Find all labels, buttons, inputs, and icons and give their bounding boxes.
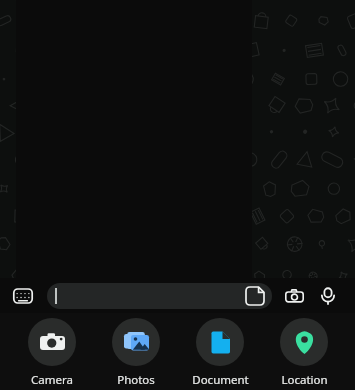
button[interactable]: Sticker [47,283,272,309]
button[interactable]: Camera [9,318,94,390]
button[interactable]: Document [178,318,262,390]
button[interactable]: Keyboard [11,284,34,307]
button[interactable]: Photos [94,318,178,390]
staticText: Photos [117,372,155,388]
button[interactable]: Sticker [246,287,264,305]
button[interactable]: Voice message [315,283,341,309]
staticText: Document [192,372,249,388]
staticText: Location [281,372,328,388]
button[interactable]: Location [262,318,346,390]
button[interactable]: Camera [281,283,307,309]
staticText: Camera [31,372,73,388]
